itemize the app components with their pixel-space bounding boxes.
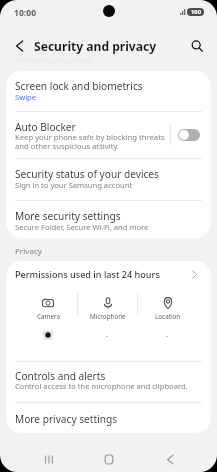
staticText: Location <box>155 312 181 321</box>
staticText: Keep your phone safe by blocking threats… <box>15 132 165 152</box>
staticText: - <box>106 330 109 340</box>
button[interactable]: Back <box>156 444 186 472</box>
button[interactable]: Auto Blocker <box>6 112 211 158</box>
button[interactable]: Home <box>94 444 124 472</box>
staticText: Privacy <box>15 246 42 257</box>
button[interactable]: More security settings <box>6 201 211 238</box>
staticText: Camera <box>37 312 60 321</box>
button[interactable]: Microphone <box>78 287 137 341</box>
staticText: More privacy settings <box>15 412 118 426</box>
staticText: Microphone <box>90 312 126 321</box>
staticText: Sign in to your Samsung account <box>15 180 133 190</box>
staticText: 100 <box>191 8 201 16</box>
staticText: Controls and alerts <box>15 369 106 383</box>
button[interactable]: Search <box>186 35 208 57</box>
button[interactable]: Location <box>138 287 197 341</box>
button[interactable]: More privacy settings <box>6 403 211 433</box>
staticText: Security and privacy <box>34 38 157 54</box>
button[interactable]: Auto Blocker toggle <box>178 129 200 141</box>
staticText: - <box>166 330 169 340</box>
staticText: Auto Blocker <box>15 120 76 134</box>
button[interactable]: Permissions used in last 24 hours <box>6 261 211 287</box>
staticText: Control access to the microphone and cli… <box>15 381 188 391</box>
staticText: Security status of your devices <box>15 167 159 181</box>
staticText: 10:00 <box>14 7 37 19</box>
button[interactable]: Controls and alerts <box>6 362 211 402</box>
button[interactable]: Navigate up <box>8 35 30 57</box>
button[interactable]: Security status of your devices <box>6 159 211 200</box>
staticText: Permissions used in last 24 hours <box>15 268 160 280</box>
button[interactable]: Screen lock and biometrics <box>6 71 211 111</box>
button[interactable]: Camera <box>19 287 77 341</box>
staticText: Secure Folder, Secure Wi-Fi, and more <box>15 222 149 232</box>
staticText: More security settings <box>15 209 121 223</box>
staticText: Screen lock and biometrics <box>15 79 143 93</box>
button[interactable]: Recent apps <box>34 444 64 472</box>
staticText: Swipe <box>15 92 37 102</box>
